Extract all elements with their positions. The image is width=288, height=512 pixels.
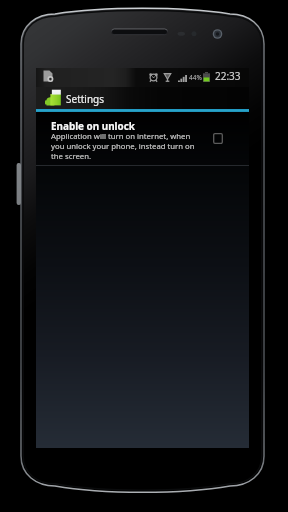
button[interactable]: Enable on unlock checkbox [213, 133, 223, 144]
button[interactable]: Settings [36, 87, 249, 109]
staticText: Application will turn on internet, when … [51, 131, 199, 161]
staticText: Settings [66, 92, 105, 106]
button[interactable]: Enable on unlock [36, 112, 249, 165]
staticText: 22:33 [215, 69, 241, 83]
staticText: 44% [189, 73, 202, 82]
staticText: Enable on unlock [51, 119, 135, 132]
